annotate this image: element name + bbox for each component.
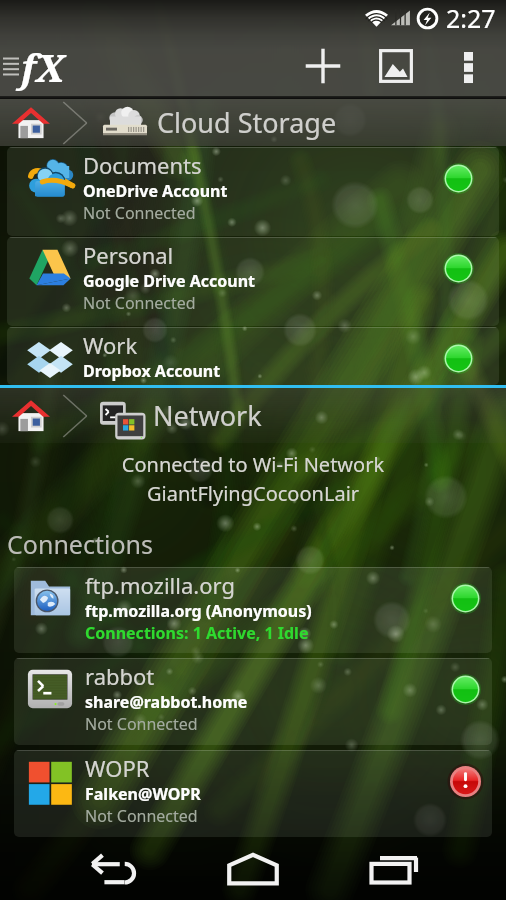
- button[interactable]: Home: [201, 838, 305, 900]
- staticText: Not Connected: [83, 292, 196, 314]
- staticText: Work: [83, 330, 138, 360]
- staticText: Documents: [83, 150, 202, 180]
- staticText: Connected to Wi-Fi Network: [0, 451, 506, 478]
- staticText: Not Connected: [85, 713, 198, 735]
- button[interactable]: Back: [62, 838, 166, 900]
- staticText: Connections: [7, 527, 153, 561]
- staticText: Not Connected: [85, 805, 198, 827]
- staticText: fX: [21, 41, 65, 93]
- button[interactable]: More options: [446, 40, 490, 92]
- staticText: Connections: 1 Active, 1 Idle: [85, 622, 309, 644]
- button[interactable]: Work: [7, 327, 499, 385]
- button[interactable]: rabbot: [14, 658, 492, 745]
- staticText: Falken@WOPR: [85, 783, 201, 805]
- button[interactable]: Add: [287, 40, 359, 92]
- staticText: share@rabbot.home: [85, 691, 248, 713]
- staticText: rabbot: [85, 661, 155, 691]
- button[interactable]: WOPR: [14, 750, 492, 837]
- staticText: 2:27: [446, 1, 496, 35]
- staticText: Cloud Storage: [157, 104, 337, 141]
- button[interactable]: Personal: [7, 237, 499, 326]
- button[interactable]: Gallery: [362, 40, 430, 92]
- button[interactable]: ftp.mozilla.org: [14, 567, 492, 653]
- button[interactable]: Cloud Storage: [0, 99, 506, 146]
- staticText: Dropbox Account: [83, 360, 221, 382]
- staticText: ftp.mozilla.org (Anonymous): [85, 600, 312, 622]
- button[interactable]: Network: [0, 388, 506, 443]
- button[interactable]: Recent apps: [342, 838, 446, 900]
- button[interactable]: Documents: [7, 147, 499, 236]
- staticText: OneDrive Account: [83, 180, 228, 202]
- staticText: ftp.mozilla.org: [85, 570, 235, 600]
- staticText: Personal: [83, 240, 174, 270]
- staticText: GiantFlyingCocoonLair: [0, 480, 506, 507]
- staticText: WOPR: [85, 753, 150, 783]
- staticText: Network: [153, 397, 262, 434]
- staticText: Not Connected: [83, 202, 196, 224]
- staticText: Google Drive Account: [83, 270, 256, 292]
- button[interactable]: Navigation drawer: [0, 46, 22, 86]
